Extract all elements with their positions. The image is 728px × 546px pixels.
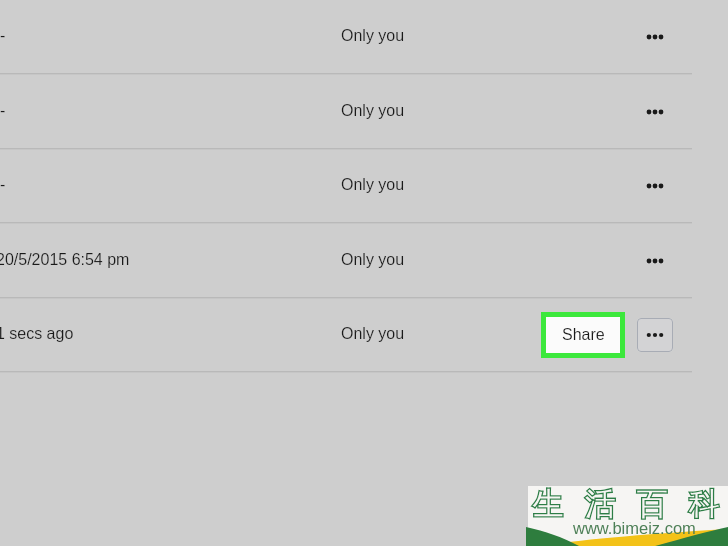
staticText: - xyxy=(0,102,6,120)
staticText: 20/5/2015 6:54 pm xyxy=(0,251,130,269)
button[interactable]: More options xyxy=(640,97,670,127)
staticText: 活 xyxy=(584,485,615,524)
staticText: 科 xyxy=(688,485,719,524)
button[interactable]: More options xyxy=(637,318,673,352)
staticText: www.bimeiz.com xyxy=(573,519,696,537)
staticText: Only you xyxy=(341,251,405,269)
staticText: Only you xyxy=(341,176,405,194)
button[interactable]: More options xyxy=(640,171,670,201)
staticText: 51 secs ago xyxy=(0,325,74,343)
staticText: - xyxy=(0,27,6,45)
staticText: Only you xyxy=(341,325,405,343)
staticText: - xyxy=(0,176,6,194)
staticText: Only you xyxy=(341,102,405,120)
staticText: Only you xyxy=(341,27,405,45)
button[interactable]: More options xyxy=(640,22,670,52)
staticText: 百 xyxy=(636,485,667,524)
staticText: 生 xyxy=(532,485,563,524)
staticText: Share xyxy=(562,326,605,344)
button[interactable]: More options xyxy=(640,246,670,276)
button[interactable]: Share xyxy=(546,317,620,353)
